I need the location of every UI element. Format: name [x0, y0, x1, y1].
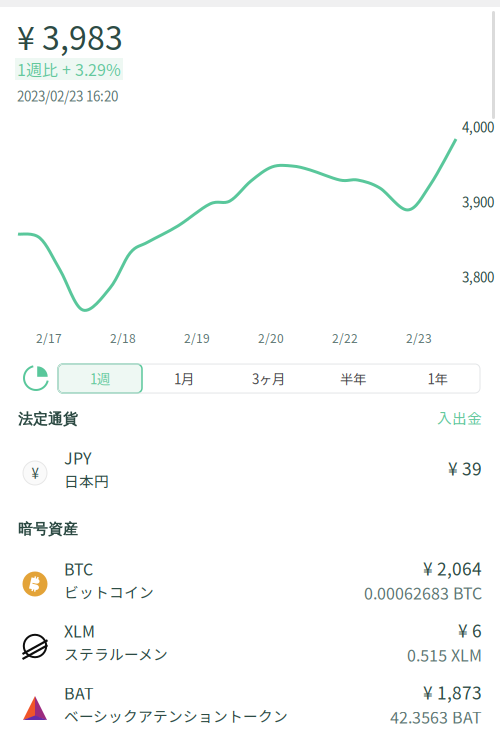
button[interactable]: XLM	[0, 617, 500, 675]
staticText: 2/20	[258, 329, 284, 346]
staticText: 日本円	[64, 470, 109, 491]
staticText: 1年	[427, 369, 447, 388]
staticText: 法定通貨	[18, 410, 78, 428]
staticText: 1月	[174, 369, 194, 388]
staticText: 暗号資産	[18, 520, 78, 538]
staticText: 3,900	[462, 192, 494, 211]
staticText: 2/23	[406, 329, 432, 346]
staticText: ¥ 6	[458, 617, 482, 643]
staticText: 半年	[340, 369, 366, 388]
staticText: ¥ 3,983	[17, 13, 123, 59]
button[interactable]: Asset breakdown	[18, 363, 54, 393]
button[interactable]: 入出金	[432, 403, 487, 432]
staticText: ¥	[31, 463, 38, 483]
staticText: 1週比 + 3.29%	[17, 57, 121, 81]
staticText: ¥ 39	[448, 455, 482, 481]
staticText: 42.3563 BAT	[390, 705, 482, 728]
staticText: 0.00062683 BTC	[364, 581, 482, 604]
staticText: ステラルーメン	[64, 643, 168, 664]
staticText: 2/19	[184, 329, 210, 346]
staticText: 0.515 XLM	[407, 643, 482, 666]
button[interactable]: 1年	[395, 364, 480, 393]
staticText: 1週	[90, 369, 110, 388]
staticText: 2023/02/23 16:20	[17, 86, 118, 105]
staticText: BTC	[64, 557, 93, 580]
button[interactable]: 半年	[311, 364, 395, 393]
staticText: 入出金	[437, 407, 482, 428]
staticText: 2/17	[36, 329, 62, 346]
button[interactable]: 1月	[142, 364, 226, 393]
button[interactable]: 1週	[58, 364, 142, 393]
button[interactable]: ¥	[0, 444, 500, 502]
staticText: ベーシックアテンショントークン	[64, 705, 288, 726]
staticText: ¥ 2,064	[423, 555, 482, 581]
button[interactable]: BAT	[0, 679, 500, 736]
staticText: 3ヶ月	[252, 369, 285, 388]
staticText: 3,800	[462, 267, 494, 286]
staticText: 4,000	[462, 117, 494, 136]
staticText: BAT	[64, 681, 94, 704]
staticText: ¥ 1,873	[423, 679, 482, 705]
staticText: XLM	[64, 619, 95, 642]
staticText: ビットコイン	[64, 581, 154, 602]
staticText: 2/22	[332, 329, 358, 346]
staticText: JPY	[64, 446, 91, 469]
staticText: 2/18	[110, 329, 136, 346]
button[interactable]: 3ヶ月	[226, 364, 311, 393]
button[interactable]: BTC	[0, 555, 500, 613]
